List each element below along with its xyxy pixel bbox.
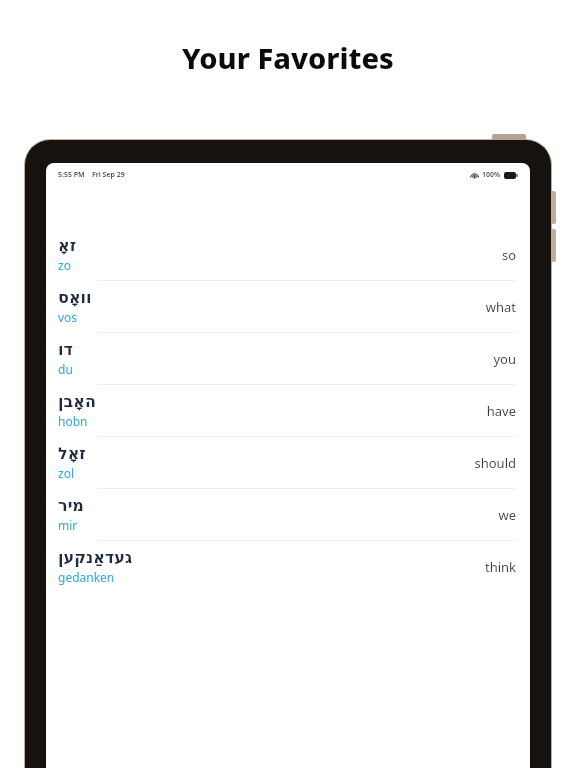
staticText: think [484,558,516,576]
staticText: זאָ [58,236,77,255]
button[interactable]: מיר [46,489,530,540]
button[interactable]: וואָס [46,281,530,332]
staticText: what [485,298,516,316]
button[interactable]: האָבן [46,385,530,436]
staticText: should [474,454,516,472]
staticText: Your Favorites [182,38,394,77]
staticText: האָבן [58,392,96,411]
staticText: vos [58,309,78,325]
button[interactable]: דו [46,333,530,384]
staticText: דו [58,340,73,359]
staticText: mir [58,517,78,533]
staticText: you [493,350,516,368]
staticText: Fri Sep 29 [92,170,125,180]
staticText: געדאַנקען [58,548,133,567]
staticText: zo [58,257,71,273]
staticText: 5:55 PM [58,170,85,180]
staticText: du [58,361,73,377]
staticText: hobn [58,413,88,429]
staticText: we [498,506,516,524]
button[interactable]: זאָל [46,437,530,488]
staticText: 100% [482,170,501,180]
staticText: מיר [58,496,84,515]
staticText: זאָל [58,444,86,463]
staticText: וואָס [58,288,92,307]
staticText: zol [58,465,74,481]
staticText: so [501,246,516,264]
staticText: have [486,402,516,420]
button[interactable]: געדאַנקען [46,541,530,592]
button[interactable]: זאָ [46,229,530,280]
staticText: gedanken [58,569,115,585]
